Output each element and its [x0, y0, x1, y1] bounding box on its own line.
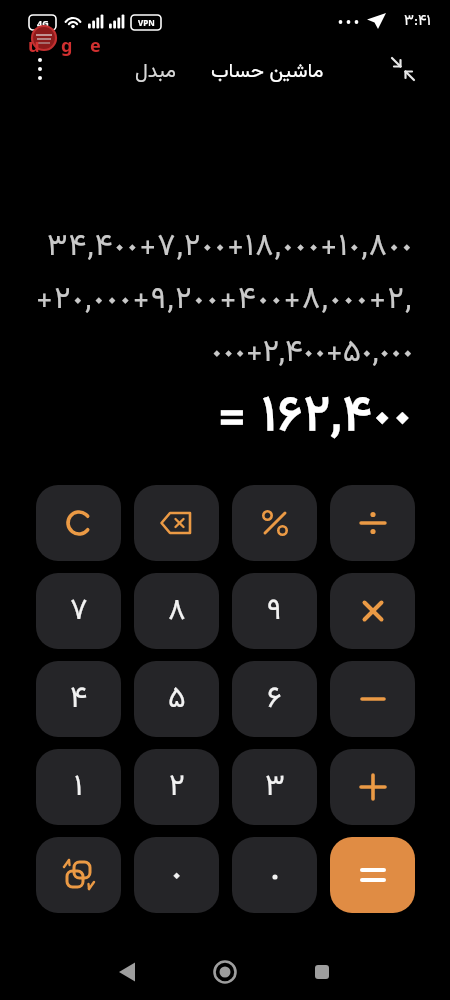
- staticText: ۳:۴۱: [404, 10, 431, 33]
- staticText: e: [90, 33, 101, 58]
- button[interactable]: [232, 837, 317, 913]
- staticText: ۹: [267, 588, 282, 635]
- button[interactable]: ۹: [232, 573, 317, 649]
- button[interactable]: ۲: [134, 749, 219, 825]
- button[interactable]: مبدل: [128, 52, 184, 90]
- button[interactable]: [330, 661, 415, 737]
- staticText: ۱: [74, 764, 83, 811]
- staticText: ٠٠٠+۲,۴٠٠+۵٠,٠٠٠: [211, 329, 414, 377]
- button[interactable]: [36, 485, 121, 561]
- staticText: ۳۴,۴٠٠+۷,۲٠٠+۱۸,٠٠٠+۱٠,۸٠٠: [47, 223, 414, 271]
- button[interactable]: ۶: [232, 661, 317, 737]
- button[interactable]: ۳: [232, 749, 317, 825]
- button[interactable]: [134, 485, 219, 561]
- button[interactable]: ۴: [36, 661, 121, 737]
- button[interactable]: [36, 837, 121, 913]
- button[interactable]: ۱: [36, 749, 121, 825]
- button[interactable]: [232, 485, 317, 561]
- staticText: ۶: [267, 676, 282, 723]
- staticText: ماشین حساب: [211, 56, 324, 87]
- button[interactable]: ۵: [134, 661, 219, 737]
- button[interactable]: [203, 950, 247, 994]
- staticText: VPN: [138, 17, 155, 28]
- staticText: ۲: [169, 764, 185, 811]
- staticText: ٠: [171, 852, 183, 899]
- staticText: +۲٠,٠٠٠+۹,۲٠٠+۴٠٠+۸,٠٠٠+۲,: [36, 276, 414, 324]
- button[interactable]: [300, 950, 344, 994]
- staticText: u: [28, 33, 40, 58]
- button[interactable]: [330, 749, 415, 825]
- button[interactable]: ماشین حساب: [204, 52, 330, 90]
- button[interactable]: ٠: [134, 837, 219, 913]
- staticText: g: [61, 33, 73, 58]
- staticText: مبدل: [135, 56, 177, 87]
- button[interactable]: ۷: [36, 573, 121, 649]
- staticText: ۸: [168, 588, 186, 635]
- staticText: = ۱۶۲,۴٠٠: [218, 379, 414, 449]
- button[interactable]: [24, 54, 56, 88]
- staticText: 4G: [37, 17, 49, 29]
- staticText: ۵: [168, 676, 186, 723]
- staticText: ۳: [265, 764, 285, 811]
- button[interactable]: [330, 837, 415, 913]
- button[interactable]: [330, 485, 415, 561]
- staticText: ۴: [70, 676, 88, 723]
- staticText: ۷: [70, 588, 88, 635]
- button[interactable]: ۸: [134, 573, 219, 649]
- button[interactable]: [386, 52, 420, 86]
- button[interactable]: [105, 950, 149, 994]
- button[interactable]: [330, 573, 415, 649]
